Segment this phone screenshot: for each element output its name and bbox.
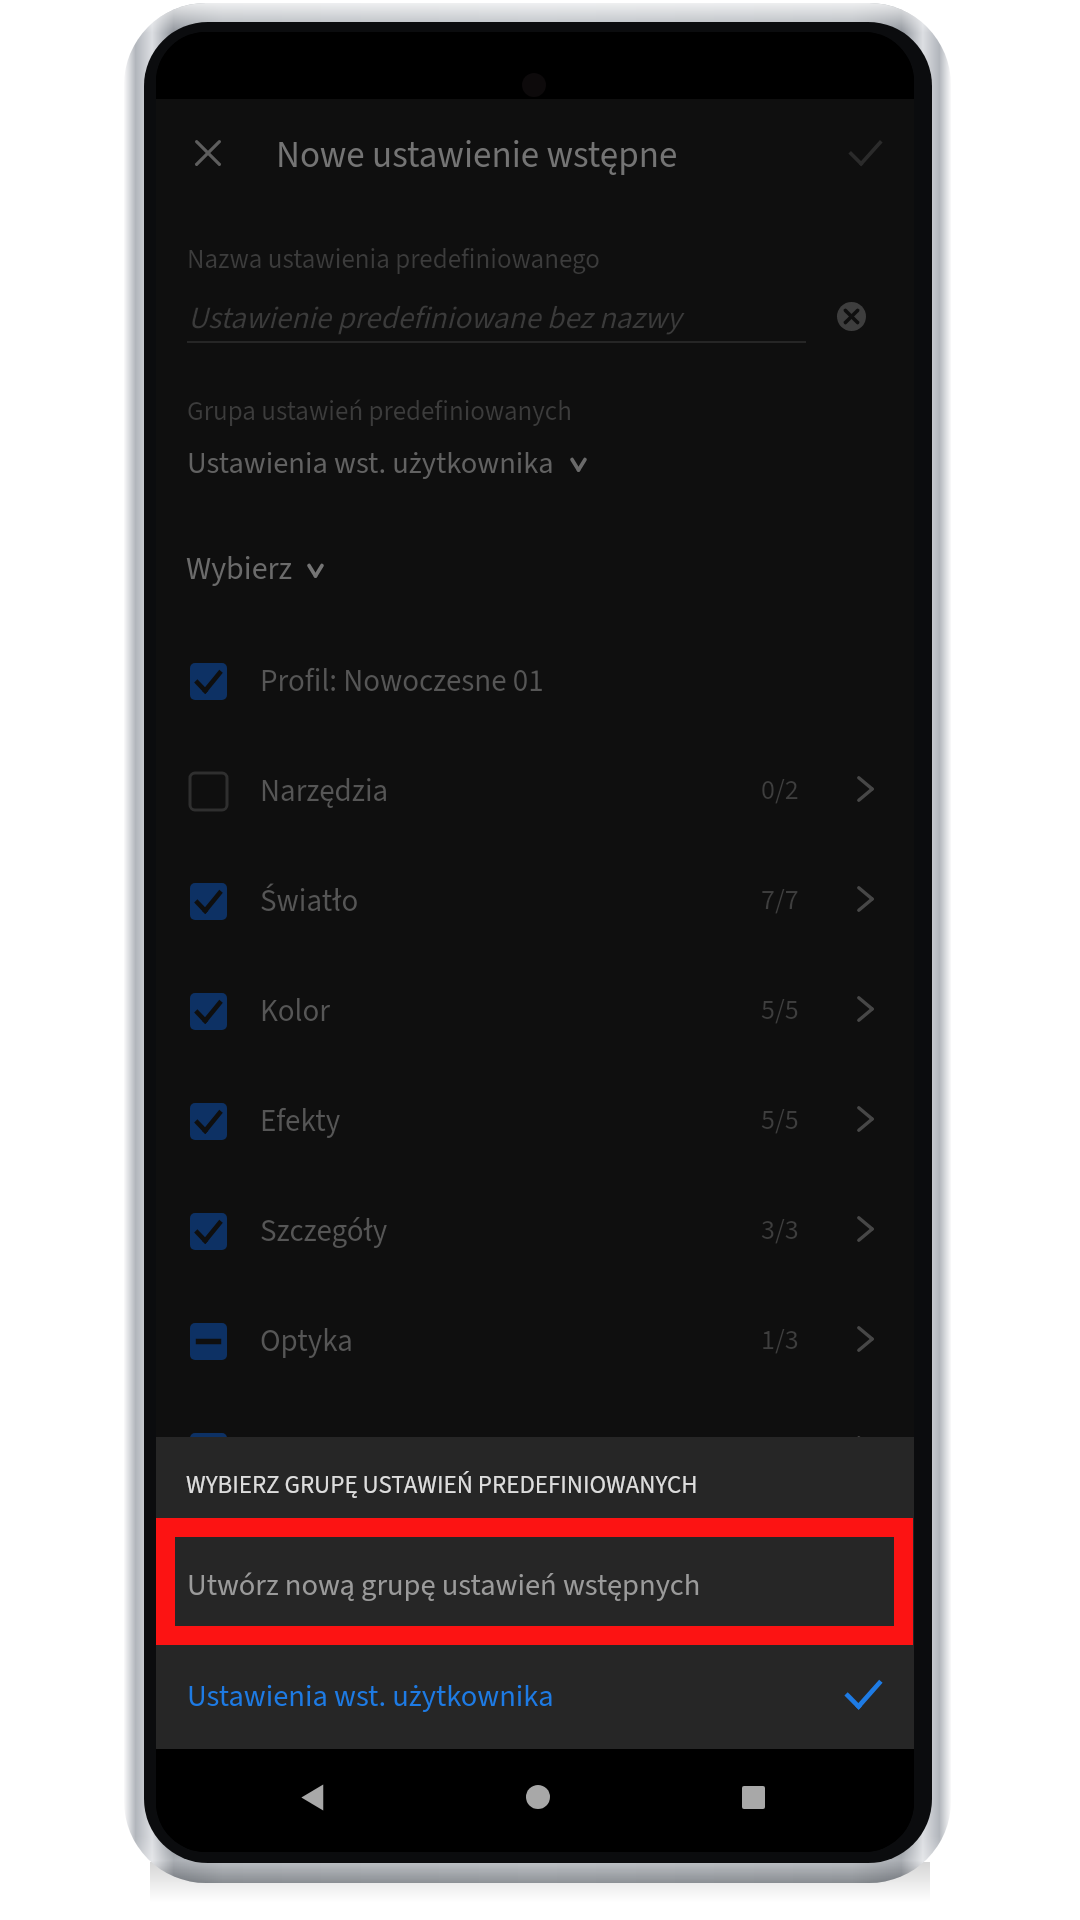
staticText: Nazwa ustawienia predefiniowanego	[187, 240, 600, 278]
staticText: Efekty	[260, 1099, 341, 1143]
button[interactable]: Kolor	[156, 956, 914, 1066]
button[interactable]: Optyka	[156, 1286, 914, 1396]
button[interactable]	[156, 1645, 914, 1748]
button[interactable]: Wybierz	[186, 539, 914, 599]
button[interactable]: Profil: Nowoczesne 01	[156, 626, 914, 736]
button[interactable]: Save preset	[837, 125, 893, 181]
staticText: 5/5	[761, 990, 799, 1030]
staticText: Narzędzia	[260, 769, 389, 813]
staticText: Grupa ustawień predefiniowanych	[187, 392, 572, 430]
staticText: Ustawienia wst. użytkownika	[187, 1675, 554, 1718]
button[interactable]: Szczegóły	[156, 1176, 914, 1286]
button[interactable]: Close	[180, 125, 236, 181]
staticText: Optyka	[260, 1319, 353, 1363]
staticText: 3/3	[761, 1210, 799, 1250]
staticText: Nowe ustawienie wstępne	[276, 129, 678, 182]
staticText: 5/5	[761, 1100, 799, 1140]
staticText: Kolor	[260, 989, 330, 1033]
staticText: 1/3	[761, 1320, 799, 1360]
staticText: 0/2	[761, 770, 799, 810]
button[interactable]: Ustawienia wst. użytkownika	[187, 433, 914, 493]
button[interactable]: Recent apps	[725, 1769, 781, 1825]
staticText: Utwórz nową grupę ustawień wstępnych	[187, 1564, 701, 1607]
button[interactable]: Ustawienia wstępne	[156, 1396, 914, 1506]
button[interactable]: Światło	[156, 846, 914, 956]
button[interactable]: Home	[510, 1769, 566, 1825]
staticText: WYBIERZ GRUPĘ USTAWIEŃ PREDEFINIOWANYCH	[186, 1467, 698, 1503]
staticText: 7/7	[761, 880, 799, 920]
button[interactable]: Clear name	[828, 293, 874, 339]
staticText: 2/2	[761, 1430, 799, 1470]
staticText: Światło	[260, 879, 359, 923]
staticText: Ustawienie predefiniowane bez nazwy	[188, 296, 682, 340]
button[interactable]: Back	[285, 1769, 341, 1825]
staticText: Ustawienia wst. użytkownika	[187, 442, 554, 485]
staticText: Szczegóły	[260, 1209, 388, 1253]
staticText: Profil: Nowoczesne 01	[260, 659, 544, 703]
button[interactable]: Efekty	[156, 1066, 914, 1176]
staticText: Ustawienia wstępne	[260, 1429, 520, 1473]
staticText: Wybierz	[186, 546, 293, 592]
button[interactable]: Narzędzia	[156, 736, 914, 846]
button[interactable]	[175, 1537, 894, 1626]
